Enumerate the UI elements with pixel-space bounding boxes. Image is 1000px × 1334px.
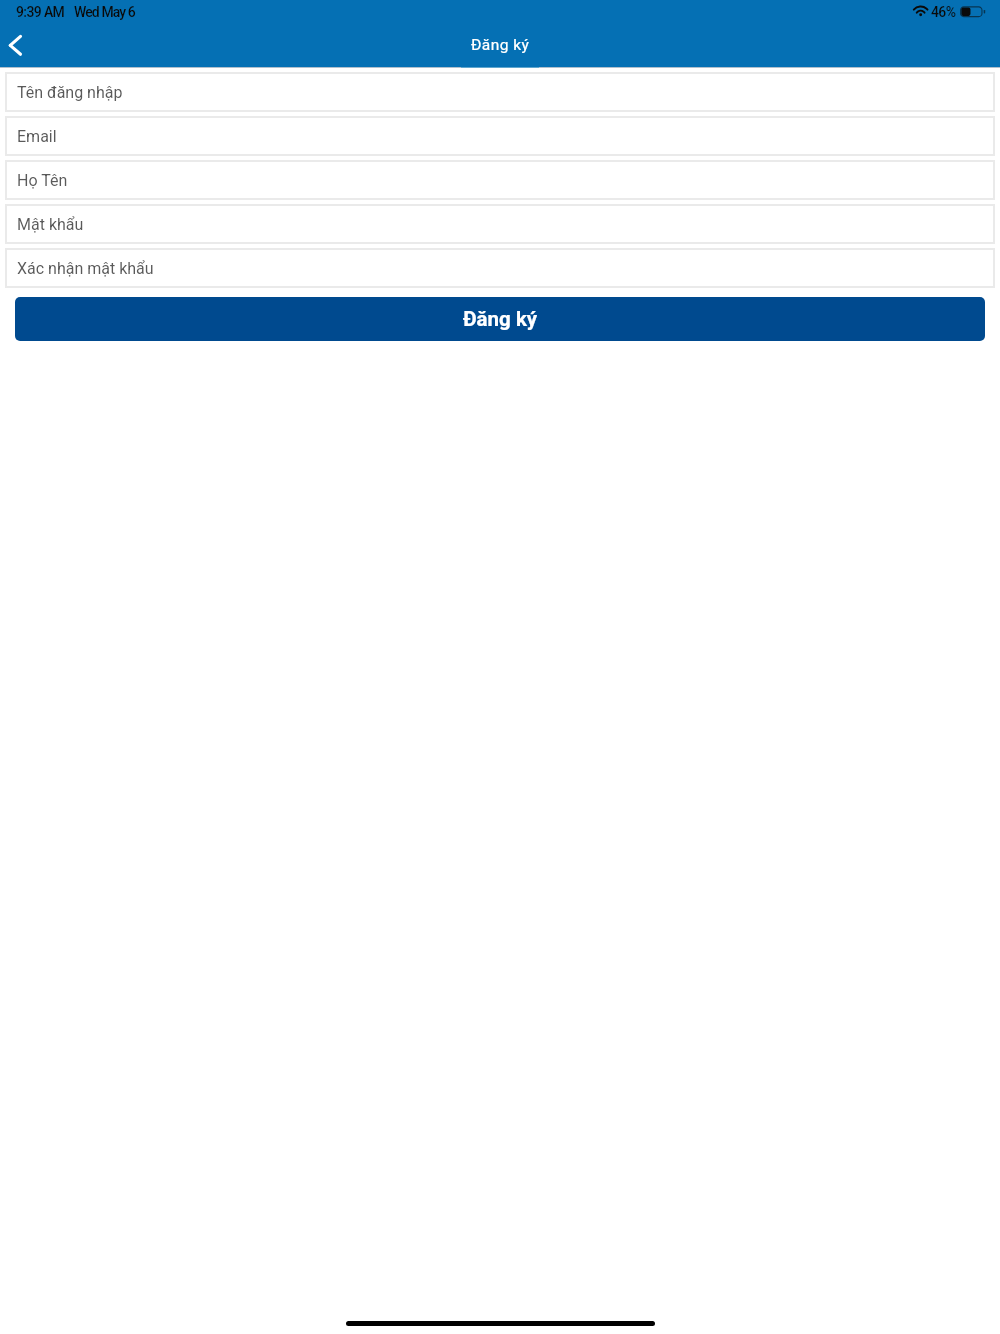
staticText: Đăng ký bbox=[463, 307, 538, 331]
staticText: Họ Tên bbox=[17, 171, 68, 190]
button[interactable]: Email bbox=[5, 116, 995, 156]
button[interactable]: Đăng ký bbox=[15, 297, 985, 341]
staticText: Wed May 6 bbox=[74, 4, 135, 20]
button[interactable]: Tên đăng nhập bbox=[5, 72, 995, 112]
staticText: Đăng ký bbox=[471, 36, 530, 54]
staticText: Tên đăng nhập bbox=[17, 83, 123, 102]
staticText: Mật khẩu bbox=[17, 215, 84, 234]
staticText: Email bbox=[17, 127, 57, 146]
button[interactable]: Xác nhận mật khẩu bbox=[5, 248, 995, 288]
button[interactable]: Back bbox=[0, 23, 44, 67]
staticText: 46% bbox=[931, 4, 956, 20]
staticText: 9:39 AM bbox=[16, 4, 65, 20]
button[interactable]: Mật khẩu bbox=[5, 204, 995, 244]
button[interactable]: Họ Tên bbox=[5, 160, 995, 200]
staticText: Xác nhận mật khẩu bbox=[17, 259, 154, 278]
